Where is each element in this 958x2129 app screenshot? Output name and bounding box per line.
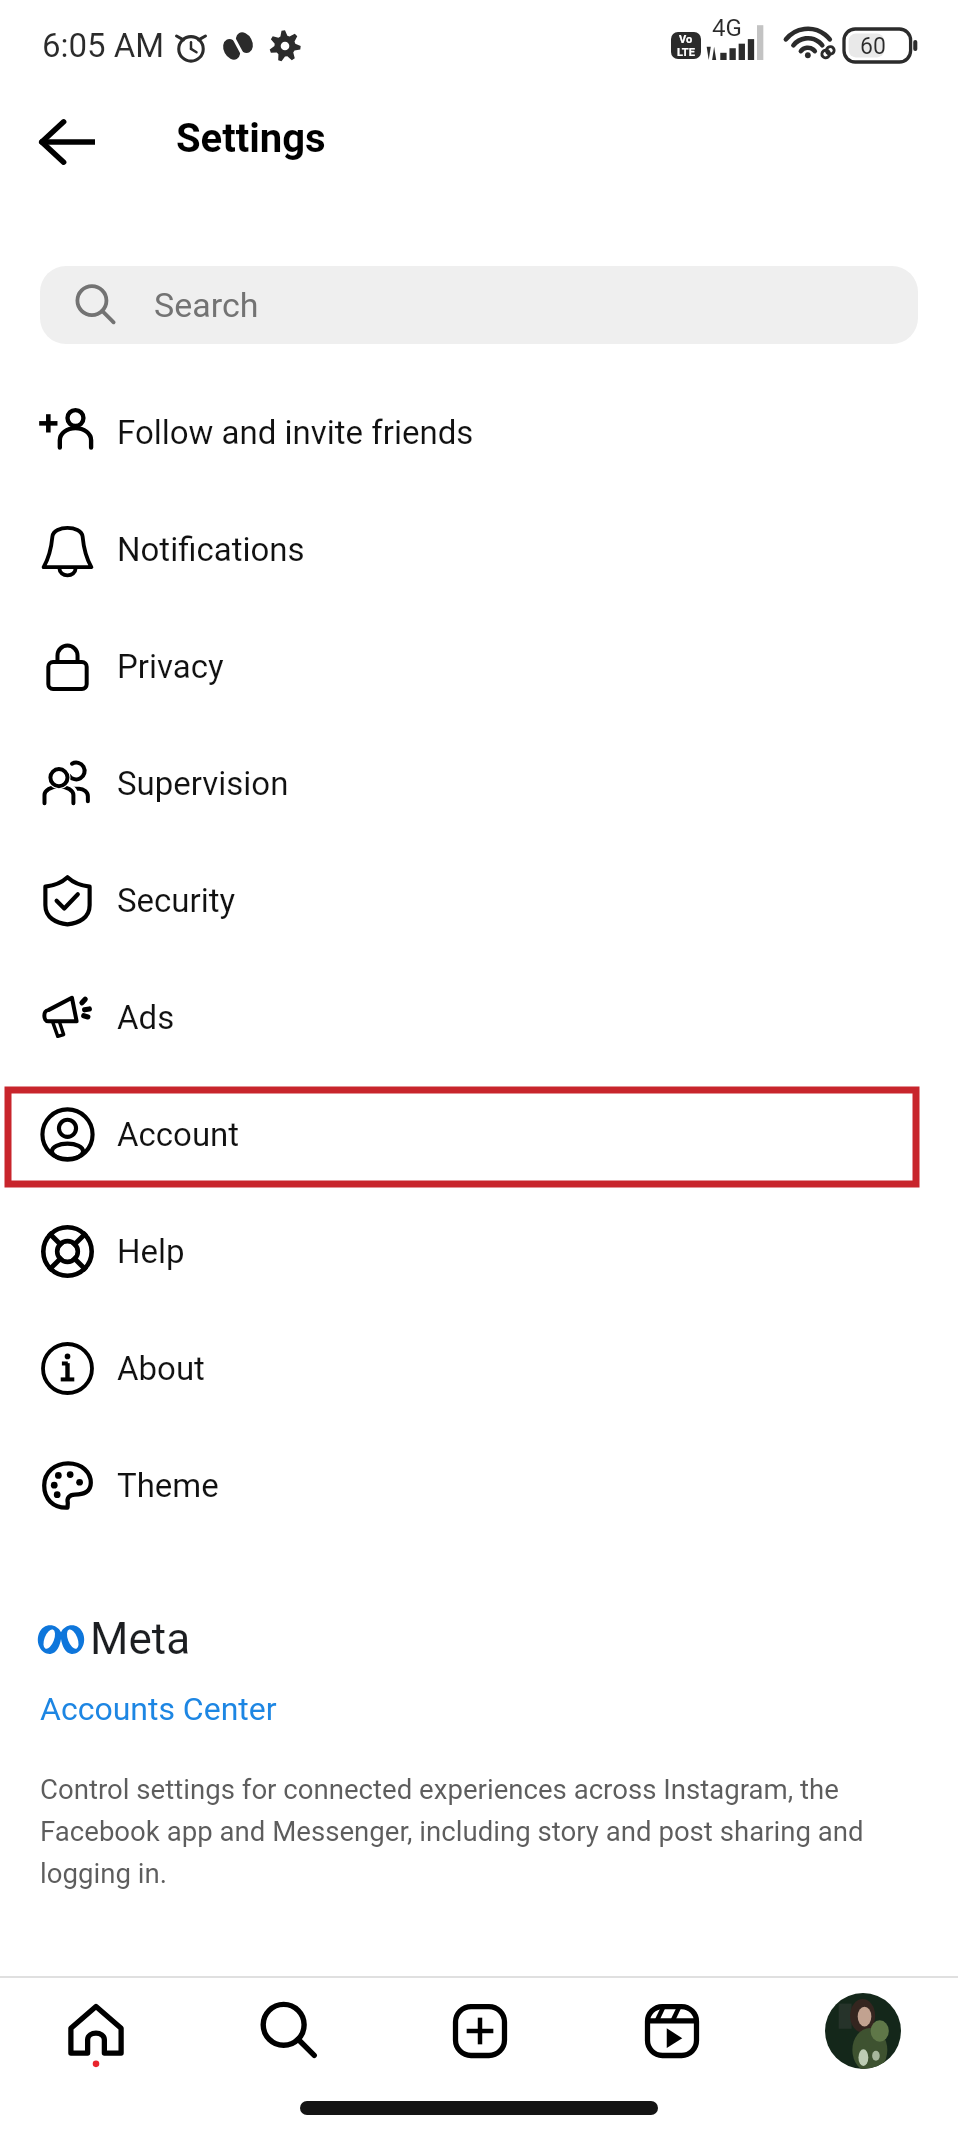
button[interactable]: Back — [22, 97, 112, 187]
staticText: Vo — [679, 33, 693, 46]
staticText: Meta — [90, 1613, 191, 1665]
button[interactable]: Supervision — [0, 725, 958, 841]
button[interactable]: Notifications — [0, 491, 958, 607]
staticText: Supervision — [117, 764, 289, 803]
button[interactable]: Create — [384, 1965, 576, 2097]
button[interactable]: Search — [192, 1965, 384, 2097]
button[interactable]: Profile — [768, 1965, 958, 2097]
staticText: Theme — [117, 1466, 219, 1505]
button[interactable]: Search — [40, 266, 918, 344]
button[interactable]: Security — [0, 842, 958, 958]
staticText: Settings — [176, 115, 326, 162]
staticText: Security — [117, 881, 236, 920]
staticText: 4G — [712, 14, 742, 42]
button[interactable]: Home — [0, 1965, 192, 2097]
staticText: About — [117, 1349, 205, 1388]
button[interactable]: Privacy — [0, 608, 958, 724]
button[interactable]: Ads — [0, 959, 958, 1075]
staticText: Follow and invite friends — [117, 413, 474, 452]
staticText: Help — [117, 1232, 185, 1271]
staticText: Notifications — [117, 530, 305, 569]
staticText: Search — [154, 285, 259, 325]
staticText: Accounts Center — [40, 1690, 277, 1728]
button[interactable]: Help — [0, 1193, 958, 1309]
button[interactable]: Follow and invite friends — [0, 374, 958, 490]
button[interactable]: Reels — [576, 1965, 768, 2097]
button[interactable]: Accounts Center — [40, 1690, 277, 1728]
staticText: Control settings for connected experienc… — [40, 1773, 884, 1889]
button[interactable]: Account — [0, 1076, 958, 1192]
staticText: Privacy — [117, 647, 224, 686]
staticText: Account — [117, 1115, 240, 1154]
button[interactable]: About — [0, 1310, 958, 1426]
staticText: Ads — [117, 998, 175, 1037]
staticText: 60 — [860, 33, 886, 60]
button[interactable]: Theme — [0, 1427, 958, 1543]
staticText: 6:05 AM — [42, 26, 165, 65]
staticText: LTE — [677, 46, 695, 59]
